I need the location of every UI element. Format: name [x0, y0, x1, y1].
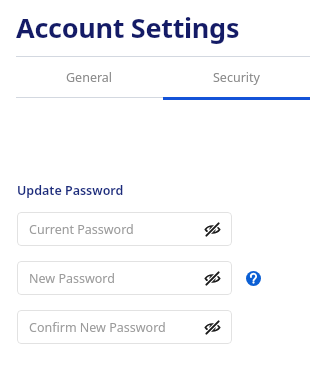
staticText: General — [66, 69, 113, 86]
button[interactable]: Show password — [202, 317, 222, 337]
button[interactable]: Show password — [202, 268, 222, 288]
staticText: Confirm New Password — [29, 319, 166, 336]
button[interactable]: Security — [163, 57, 310, 100]
staticText: Security — [213, 69, 260, 86]
button[interactable]: Confirm New Password — [17, 310, 232, 344]
button[interactable]: Current Password — [17, 212, 232, 246]
button[interactable]: Password requirements help — [244, 269, 262, 287]
staticText: New Password — [29, 270, 115, 287]
button[interactable]: Show password — [202, 219, 222, 239]
staticText: Current Password — [29, 221, 134, 238]
button[interactable]: General — [16, 57, 163, 98]
staticText: Account Settings — [16, 9, 240, 46]
button[interactable]: New Password — [17, 261, 232, 295]
staticText: Update Password — [17, 182, 124, 199]
